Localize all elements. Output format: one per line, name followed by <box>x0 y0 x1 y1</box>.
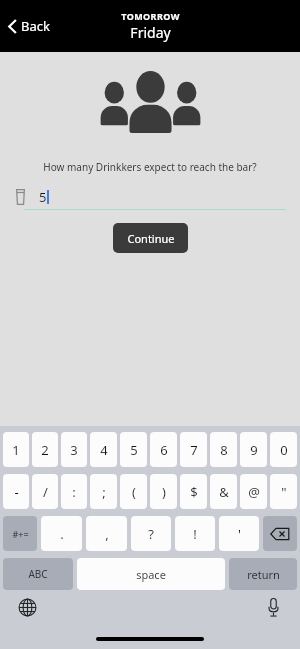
button[interactable]: 8 <box>210 432 237 467</box>
staticText: : <box>72 483 76 501</box>
button[interactable]: 3 <box>61 432 87 467</box>
staticText: , <box>105 525 109 543</box>
staticText: #+= <box>12 528 29 540</box>
staticText: . <box>60 525 64 543</box>
button[interactable]: ( <box>120 474 147 509</box>
staticText: 1 <box>12 441 20 459</box>
button[interactable]: . <box>41 516 82 551</box>
staticText: 0 <box>280 441 288 459</box>
button[interactable]: , <box>86 516 127 551</box>
button[interactable]: 9 <box>240 432 267 467</box>
button[interactable]: ABC <box>3 558 73 590</box>
staticText: Back <box>21 17 50 35</box>
staticText: ? <box>148 525 154 543</box>
other: Group of people <box>98 69 203 133</box>
staticText: 3 <box>70 441 78 459</box>
staticText: 5 <box>130 441 138 459</box>
button[interactable]: " <box>270 474 297 509</box>
staticText: ABC <box>28 567 48 581</box>
button[interactable]: 7 <box>180 432 207 467</box>
button[interactable]: 5 <box>120 432 147 467</box>
staticText: 5 <box>39 188 47 206</box>
staticText: 4 <box>100 441 108 459</box>
staticText: & <box>219 483 229 501</box>
button[interactable]: & <box>210 474 237 509</box>
button[interactable]: Backspace <box>263 516 297 551</box>
staticText: $ <box>190 483 198 501</box>
button[interactable]: 1 <box>3 432 29 467</box>
staticText: / <box>43 483 48 501</box>
button[interactable]: 4 <box>90 432 117 467</box>
staticText: TOMORROW <box>121 10 180 22</box>
staticText: ( <box>132 483 136 501</box>
other: Drinks <box>16 189 25 205</box>
button[interactable]: Dictation <box>262 596 284 618</box>
staticText: space <box>136 567 166 582</box>
staticText: 8 <box>220 441 228 459</box>
button[interactable]: 2 <box>32 432 58 467</box>
staticText: ' <box>238 525 241 543</box>
button[interactable]: return <box>229 558 297 590</box>
button[interactable]: 0 <box>270 432 297 467</box>
button[interactable]: @ <box>240 474 267 509</box>
staticText: How many Drinkkers expect to reach the b… <box>20 160 280 174</box>
staticText: @ <box>248 483 260 501</box>
button[interactable]: Change keyboard language <box>16 596 38 618</box>
button[interactable]: Continue <box>113 223 188 253</box>
button[interactable]: ; <box>90 474 117 509</box>
staticText: - <box>14 483 19 501</box>
staticText: 7 <box>190 441 198 459</box>
staticText: return <box>247 567 280 582</box>
button[interactable]: space <box>77 558 225 590</box>
staticText: ; <box>102 483 106 501</box>
button[interactable]: / <box>32 474 58 509</box>
button[interactable]: ) <box>150 474 177 509</box>
button[interactable]: - <box>3 474 29 509</box>
staticText: 6 <box>160 441 168 459</box>
button[interactable]: ' <box>219 516 259 551</box>
button[interactable]: Back <box>4 10 54 42</box>
staticText: 9 <box>250 441 258 459</box>
button[interactable]: ! <box>175 516 215 551</box>
staticText: ) <box>162 483 166 501</box>
button[interactable]: ? <box>131 516 171 551</box>
staticText: " <box>281 483 287 501</box>
staticText: Friday <box>130 23 171 42</box>
staticText: 2 <box>41 441 49 459</box>
button[interactable]: #+= <box>3 516 37 551</box>
staticText: ! <box>193 525 197 543</box>
button[interactable]: $ <box>180 474 207 509</box>
button[interactable]: 6 <box>150 432 177 467</box>
button[interactable]: : <box>61 474 87 509</box>
staticText: Continue <box>127 231 175 246</box>
